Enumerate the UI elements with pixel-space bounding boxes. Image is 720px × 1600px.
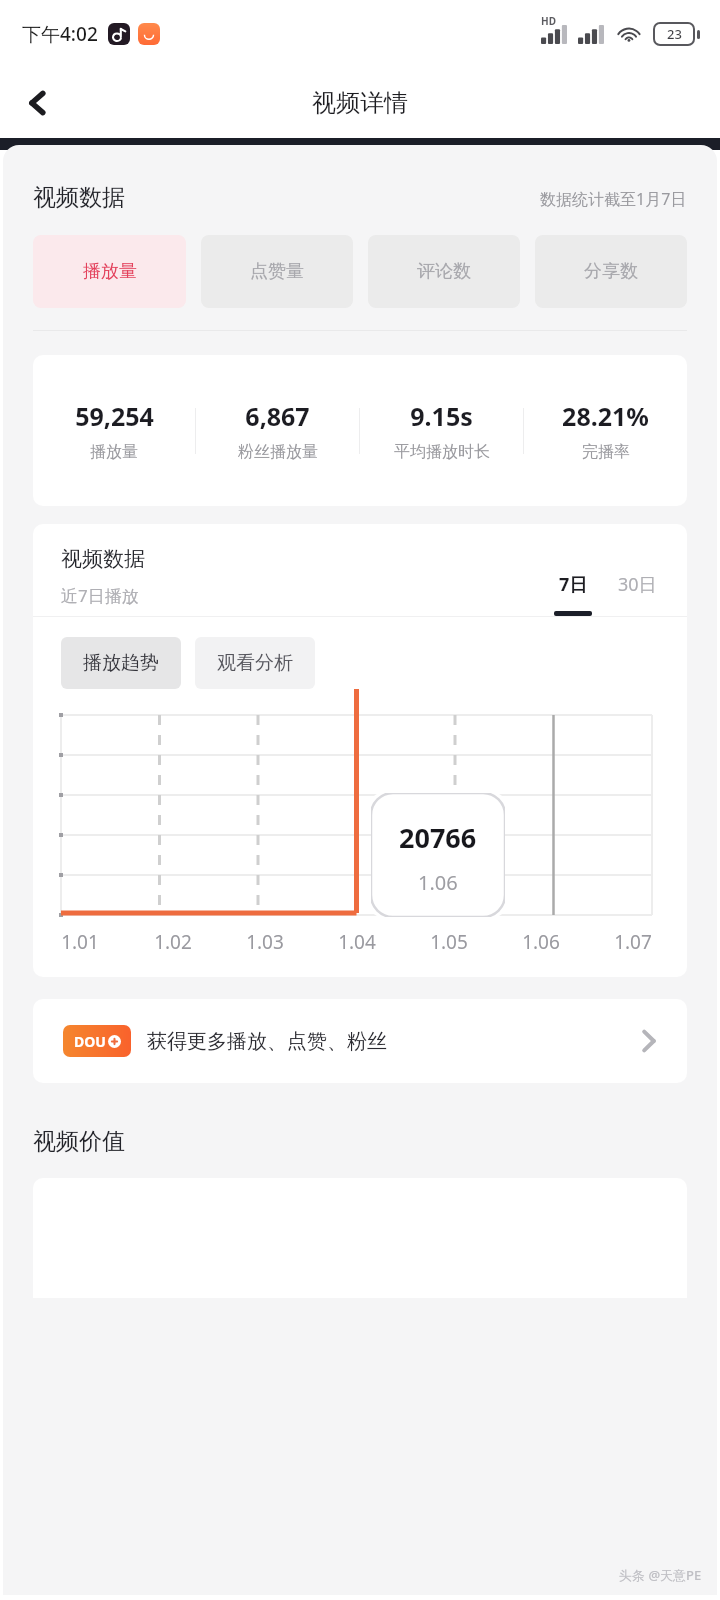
staticText: 1.07 [614, 929, 652, 955]
staticText: 平均播放时长 [394, 442, 490, 462]
staticText: 20766 [399, 819, 477, 856]
staticText: 数据统计截至1月7日 [540, 188, 687, 210]
staticText: 视频数据 [61, 546, 145, 572]
staticText: 播放趋势 [83, 651, 159, 675]
staticText: 头条 @天意PE [619, 1566, 702, 1584]
staticText: 视频详情 [312, 88, 408, 118]
staticText: 近7日播放 [61, 584, 139, 607]
staticText: 6,867 [245, 399, 310, 433]
button[interactable]: 28.21% [524, 399, 687, 462]
staticText: HD [541, 14, 556, 28]
staticText: DOU [74, 1032, 106, 1051]
staticText: 1.03 [246, 929, 284, 955]
staticText: 观看分析 [217, 651, 293, 675]
staticText: 评论数 [417, 260, 471, 283]
staticText: 23 [667, 25, 682, 43]
staticText: 完播率 [582, 442, 630, 462]
staticText: 粉丝播放量 [238, 442, 318, 462]
button[interactable]: 播放量 [33, 235, 186, 308]
button[interactable]: 播放趋势 [61, 637, 181, 689]
button[interactable]: 6,867 [196, 399, 359, 462]
staticText: 28.21% [562, 399, 649, 433]
staticText: 1.01 [61, 929, 99, 955]
button[interactable]: 分享数 [535, 235, 687, 308]
button[interactable]: 观看分析 [195, 637, 315, 689]
staticText: 30日 [618, 572, 657, 597]
button[interactable]: 点赞量 [201, 235, 353, 308]
staticText: 9.15s [410, 399, 473, 433]
staticText: 1.05 [430, 929, 468, 955]
button[interactable]: 9.15s [360, 399, 523, 462]
staticText: 视频数据 [33, 183, 125, 212]
staticText: 1.06 [418, 869, 458, 896]
button[interactable]: DOU [33, 999, 687, 1083]
staticText: 1.02 [154, 929, 192, 955]
staticText: 播放量 [90, 442, 138, 462]
staticText: 1.04 [338, 929, 376, 955]
button[interactable]: 7日 [554, 572, 592, 616]
staticText: 7日 [559, 572, 588, 597]
button[interactable]: 返回 [12, 77, 64, 129]
staticText: 下午4:02 [22, 21, 98, 47]
button[interactable]: 30日 [618, 572, 657, 597]
staticText: 分享数 [584, 260, 638, 283]
button[interactable]: 59,254 [33, 399, 195, 462]
staticText: 1.06 [522, 929, 560, 955]
staticText: 视频价值 [33, 1127, 125, 1156]
staticText: 59,254 [75, 399, 154, 433]
staticText: 获得更多播放、点赞、粉丝 [147, 1029, 387, 1054]
staticText: 点赞量 [250, 260, 304, 283]
button[interactable]: 评论数 [368, 235, 520, 308]
staticText: 播放量 [83, 260, 137, 283]
